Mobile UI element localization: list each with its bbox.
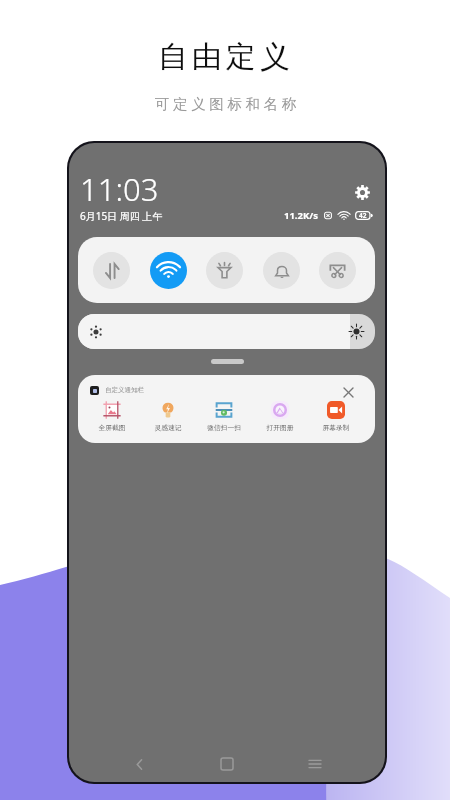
staticText: 6月15日 周四 上午	[80, 209, 163, 223]
button[interactable]: Notifications	[263, 252, 300, 289]
button[interactable]: Back	[121, 746, 157, 782]
button[interactable]: Home	[209, 746, 245, 782]
staticText: 11.2K/s	[284, 209, 318, 222]
button[interactable]: 全屏截图	[84, 401, 139, 432]
button[interactable]: Settings	[349, 179, 375, 205]
staticText: 打开图册	[266, 423, 294, 432]
button[interactable]: Close	[336, 380, 360, 404]
button[interactable]: Flashlight	[206, 252, 243, 289]
staticText: 可定义图标和名称	[155, 95, 300, 113]
staticText: 全屏截图	[98, 423, 126, 432]
button[interactable]: 灵感速记	[140, 401, 195, 432]
button[interactable]: Mobile data	[93, 252, 130, 289]
staticText: 灵感速记	[154, 423, 182, 432]
staticText: 42	[359, 211, 367, 220]
button[interactable]: 打开图册	[252, 401, 307, 432]
staticText: 微信扫一扫	[207, 423, 241, 432]
staticText: 自定义通知栏	[105, 386, 144, 394]
button[interactable]: Screenshot	[319, 252, 356, 289]
staticText: 自由定义	[156, 38, 292, 76]
button[interactable]: Recents	[297, 746, 333, 782]
button[interactable]: 微信扫一扫	[196, 401, 251, 432]
staticText: 11:03	[80, 168, 159, 210]
button[interactable]: 屏幕录制	[308, 401, 363, 432]
button[interactable]: Wi-Fi	[150, 252, 187, 289]
staticText: 屏幕录制	[322, 423, 350, 432]
button[interactable]: Brightness	[78, 314, 375, 349]
